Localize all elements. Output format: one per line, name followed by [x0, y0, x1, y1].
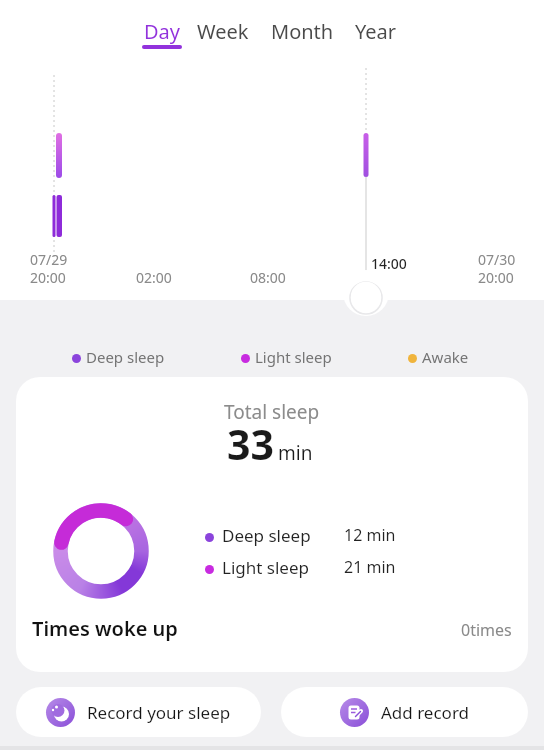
staticText: 20:00 — [30, 268, 66, 287]
staticText: Record your sleep — [87, 701, 231, 724]
staticText: Year — [355, 18, 397, 45]
staticText: Month — [271, 18, 334, 45]
button[interactable]: Record your sleep — [16, 687, 261, 737]
staticText: Light sleep — [255, 347, 332, 367]
button[interactable]: Week — [197, 18, 249, 45]
staticText: Add record — [381, 701, 470, 724]
button[interactable]: Add record — [281, 687, 528, 737]
staticText: Deep sleep — [222, 524, 311, 547]
button[interactable]: Day — [136, 12, 188, 56]
button[interactable]: Month — [271, 18, 334, 45]
staticText: Times woke up — [32, 615, 178, 642]
staticText: min — [278, 440, 313, 466]
staticText: 07/30 — [478, 250, 516, 269]
staticText: 07/29 — [30, 250, 68, 269]
staticText: 14:00 — [371, 254, 407, 273]
staticText: Total sleep — [224, 399, 320, 425]
staticText: Light sleep — [222, 556, 309, 579]
staticText: 0times — [461, 619, 512, 641]
staticText: 33 — [227, 416, 274, 472]
staticText: Awake — [422, 347, 469, 367]
staticText: 21 min — [344, 556, 396, 578]
staticText: Week — [197, 18, 249, 45]
staticText: 20:00 — [478, 268, 514, 287]
staticText: 08:00 — [250, 268, 286, 287]
staticText: Deep sleep — [86, 347, 165, 367]
staticText: 02:00 — [136, 268, 172, 287]
button[interactable]: Year — [355, 18, 397, 45]
staticText: Day — [144, 18, 181, 45]
staticText: 12 min — [344, 524, 396, 546]
